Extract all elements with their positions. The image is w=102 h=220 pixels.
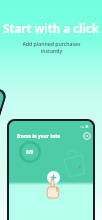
staticText: Start with a click bbox=[3, 21, 99, 37]
staticText: 0/0 bbox=[26, 149, 34, 155]
button[interactable]: Add item bbox=[47, 171, 60, 184]
button[interactable]: Account bbox=[83, 132, 91, 140]
staticText: Items in your tote bbox=[17, 133, 61, 140]
staticText: Add planned purchases instantly bbox=[22, 40, 81, 54]
